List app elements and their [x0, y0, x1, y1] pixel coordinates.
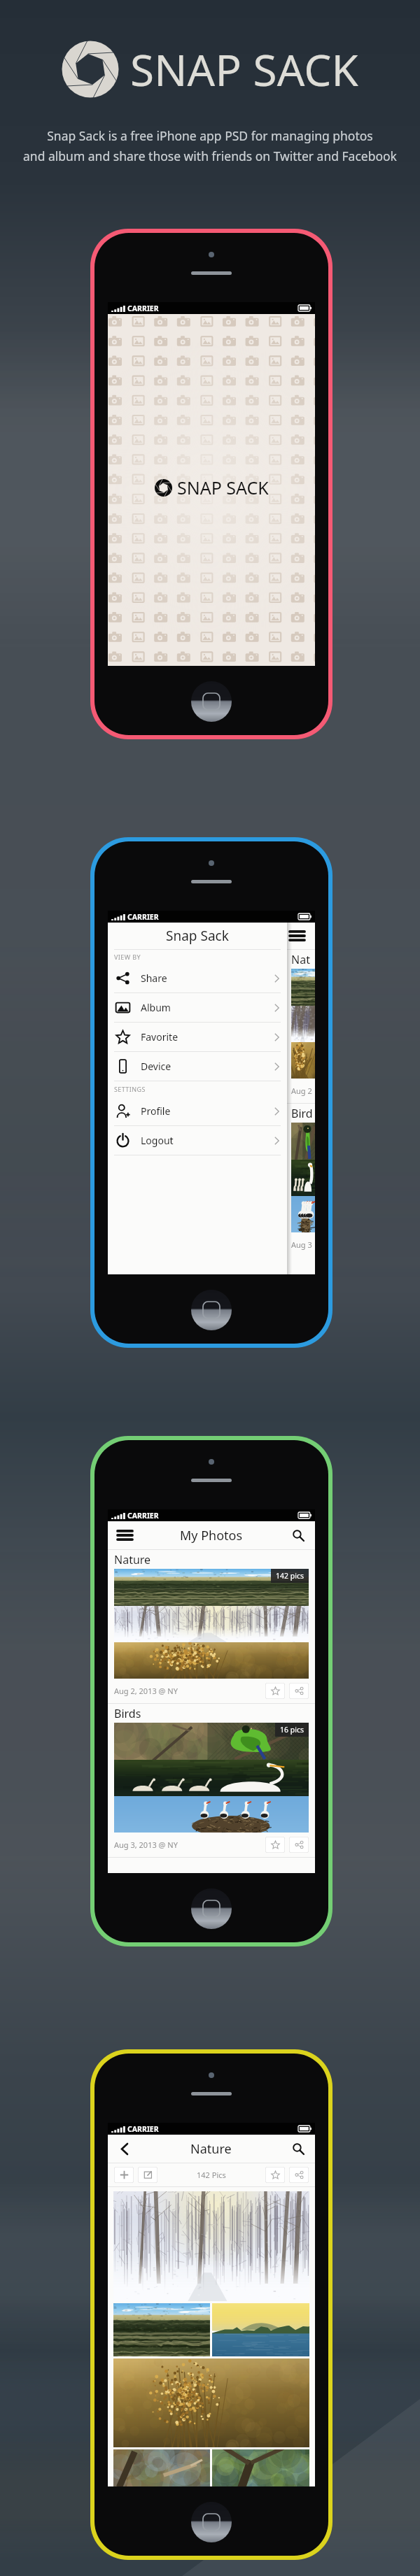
- button[interactable]: Add: [114, 2167, 134, 2183]
- button[interactable]: Favorite: [108, 1023, 287, 1052]
- button[interactable]: Favorite: [265, 2167, 285, 2183]
- button[interactable]: Share: [289, 1837, 309, 1853]
- staticText: 142 pics: [276, 1571, 304, 1581]
- button[interactable]: Favorite: [265, 1837, 285, 1853]
- button[interactable]: Birds: [108, 1704, 315, 1858]
- staticText: Snap Sack: [166, 927, 229, 945]
- staticText: Aug 2, 2013 @ NY: [114, 1686, 178, 1696]
- staticText: CARRIER: [127, 304, 159, 313]
- staticText: SNAP SACK: [130, 40, 359, 99]
- button[interactable]: Share: [289, 1683, 309, 1699]
- staticText: CARRIER: [127, 1511, 159, 1521]
- button[interactable]: Favorite: [265, 1683, 285, 1699]
- button[interactable]: Menu: [115, 1526, 134, 1544]
- button[interactable]: Edit: [138, 2167, 157, 2183]
- staticText: CARRIER: [127, 2124, 159, 2134]
- button[interactable]: Search: [289, 1526, 307, 1544]
- button[interactable]: Share: [108, 964, 287, 993]
- button[interactable]: Search: [289, 2140, 307, 2158]
- staticText: Album: [141, 1001, 171, 1014]
- staticText: SNAP SACK: [177, 476, 269, 499]
- staticText: VIEW BY: [114, 953, 141, 961]
- staticText: Bird: [291, 1106, 313, 1121]
- button[interactable]: Profile: [108, 1097, 287, 1126]
- staticText: Nat: [291, 952, 310, 967]
- staticText: Aug 2: [291, 1086, 312, 1096]
- staticText: Aug 3: [291, 1239, 312, 1250]
- staticText: Logout: [141, 1134, 174, 1147]
- staticText: 142 Pics: [197, 2170, 226, 2180]
- button[interactable]: Device: [108, 1052, 287, 1081]
- staticText: CARRIER: [127, 912, 159, 922]
- staticText: 16 pics: [280, 1725, 304, 1735]
- staticText: Favorite: [141, 1030, 178, 1044]
- staticText: SETTINGS: [114, 1085, 146, 1093]
- button[interactable]: Share: [289, 2167, 309, 2183]
- staticText: Nature: [190, 2140, 232, 2158]
- button[interactable]: Nature: [108, 1550, 315, 1704]
- staticText: My Photos: [180, 1527, 243, 1544]
- staticText: Nature: [114, 1552, 151, 1567]
- button[interactable]: Album: [108, 993, 287, 1023]
- staticText: Snap Sack is a free iPhone app PSD for m…: [23, 127, 397, 164]
- button[interactable]: Back: [115, 2140, 134, 2158]
- staticText: Share: [141, 972, 167, 985]
- staticText: Aug 3, 2013 @ NY: [114, 1840, 178, 1850]
- button[interactable]: Logout: [108, 1126, 287, 1155]
- staticText: Device: [141, 1060, 171, 1073]
- staticText: Birds: [114, 1706, 141, 1721]
- staticText: Profile: [141, 1104, 171, 1118]
